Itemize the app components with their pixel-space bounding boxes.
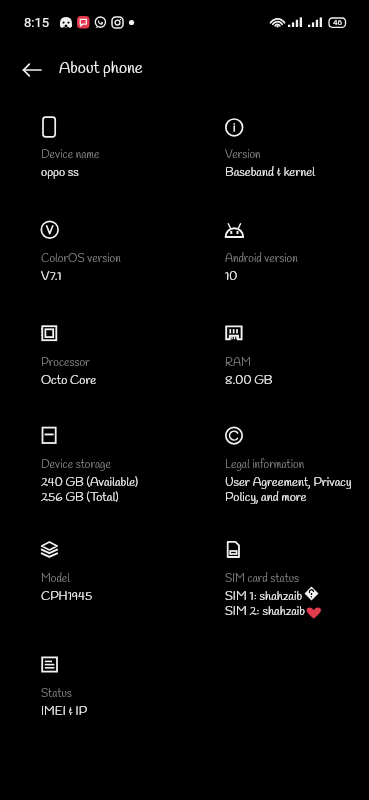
staticText: ColorOS version [41, 251, 121, 266]
staticText: Status [41, 686, 72, 701]
button[interactable]: ColorOS version [0, 221, 184, 291]
staticText: 8.00 GB [225, 372, 273, 389]
staticText: Octo Core [41, 372, 97, 389]
staticText: Device storage [41, 457, 111, 472]
staticText: oppo ss [41, 164, 79, 181]
staticText: Baseband & kernel [225, 164, 316, 181]
button[interactable]: SIM card status [184, 541, 369, 628]
staticText: RAM [225, 355, 251, 370]
button[interactable]: RAM [184, 325, 369, 395]
staticText: Android version [225, 251, 298, 266]
staticText: User Agreement, Privacy Policy, and more [225, 474, 352, 506]
button[interactable]: Processor [0, 325, 184, 395]
button[interactable]: Android version [184, 221, 369, 291]
staticText: 10 [225, 268, 238, 285]
button[interactable]: Navigate back [12, 53, 46, 87]
button[interactable]: Model [0, 541, 184, 611]
button[interactable]: Device name [0, 117, 184, 187]
button[interactable]: Device storage [0, 427, 184, 512]
staticText: IMEI & IP [41, 703, 88, 720]
staticText: Model [41, 571, 71, 586]
button[interactable]: Version [184, 117, 369, 187]
staticText: 240 GB (Available) 256 GB (Total) [41, 474, 138, 506]
staticText: Device name [41, 147, 100, 162]
staticText: SIM card status [225, 571, 300, 586]
staticText: 46 [333, 18, 342, 27]
staticText: Processor [41, 355, 90, 370]
staticText: Version [225, 147, 261, 162]
staticText: About phone [59, 58, 143, 80]
staticText: 8:15 [24, 15, 50, 30]
button[interactable]: Status [0, 656, 184, 726]
button[interactable]: Legal information [184, 427, 369, 512]
staticText: Legal information [225, 457, 305, 472]
staticText: V7.1 [41, 268, 62, 285]
staticText: SIM 1: shahzaib SIM 2: shahzaib [225, 588, 305, 620]
staticText: CPH1945 [41, 588, 93, 605]
